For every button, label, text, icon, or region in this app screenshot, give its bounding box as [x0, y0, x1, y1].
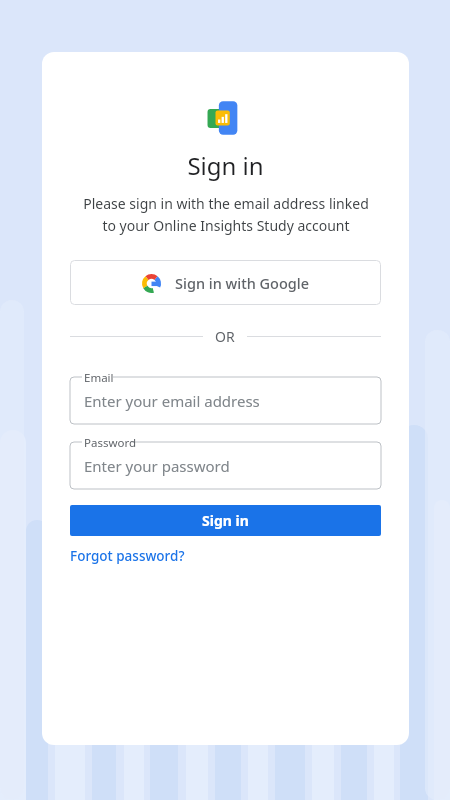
staticText: Enter your password	[84, 456, 230, 476]
staticText: Password	[84, 435, 137, 451]
button[interactable]: Email	[70, 369, 381, 424]
staticText: Please sign in with the email address li…	[83, 194, 369, 235]
button[interactable]: Sign in	[70, 505, 381, 536]
staticText: Forgot password?	[70, 547, 185, 565]
staticText: Enter your email address	[84, 391, 260, 411]
staticText: Email	[84, 370, 114, 386]
button[interactable]: Sign in with Google	[70, 260, 381, 305]
staticText: Sign in	[202, 511, 249, 530]
staticText: Sign in with Google	[175, 273, 310, 293]
button[interactable]: Forgot password?	[70, 547, 185, 565]
staticText: Sign in	[187, 149, 264, 182]
staticText: OR	[215, 327, 235, 346]
button[interactable]: Password	[70, 434, 381, 489]
